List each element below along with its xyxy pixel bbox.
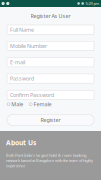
button[interactable]: Register xyxy=(7,114,94,125)
staticText: Confirm Password xyxy=(10,91,54,98)
staticText: Register xyxy=(40,116,60,124)
staticText: Mobile Number xyxy=(10,42,47,49)
staticText: Register As User xyxy=(30,12,70,20)
button[interactable]: Female xyxy=(29,101,51,108)
staticText: Password xyxy=(10,75,34,82)
staticText: About Us xyxy=(6,138,36,147)
staticText: Female xyxy=(33,101,51,108)
button[interactable]: Male xyxy=(7,101,23,108)
staticText: Full Name xyxy=(10,26,34,33)
staticText: 5:29 pm xyxy=(85,1,99,6)
staticText: Bath Point India's largest hotel & room … xyxy=(6,152,93,168)
staticText: Male xyxy=(11,101,23,108)
staticText: E-mail xyxy=(10,59,25,66)
